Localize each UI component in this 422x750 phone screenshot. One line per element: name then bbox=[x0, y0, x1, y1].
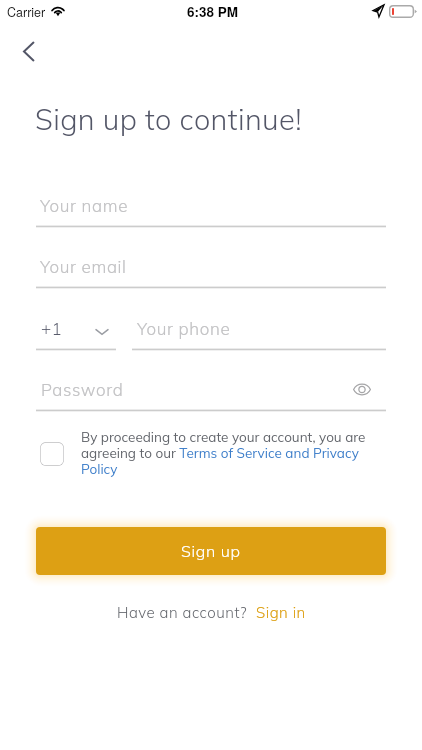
staticText: +1 bbox=[41, 318, 63, 339]
staticText: Password bbox=[41, 379, 124, 400]
button[interactable]: Sign in bbox=[256, 603, 306, 622]
staticText: Your name bbox=[40, 195, 129, 216]
button[interactable]: Sign up bbox=[36, 527, 386, 575]
staticText: Your phone bbox=[137, 318, 231, 339]
button[interactable]: Accept terms and conditions bbox=[40, 442, 64, 466]
staticText: 6:38 PM bbox=[187, 2, 239, 21]
button[interactable]: Show password bbox=[347, 374, 377, 404]
staticText: Sign up to continue! bbox=[35, 101, 302, 137]
staticText: Carrier bbox=[7, 3, 46, 21]
staticText: Have an account? bbox=[117, 603, 248, 622]
staticText: Your email bbox=[40, 256, 127, 277]
button[interactable]: +1 bbox=[36, 318, 116, 339]
staticText: Sign in bbox=[256, 603, 306, 622]
staticText: By proceeding to create your account, yo… bbox=[81, 428, 373, 477]
button[interactable]: Back bbox=[8, 31, 48, 71]
staticText: Sign up bbox=[181, 541, 241, 561]
